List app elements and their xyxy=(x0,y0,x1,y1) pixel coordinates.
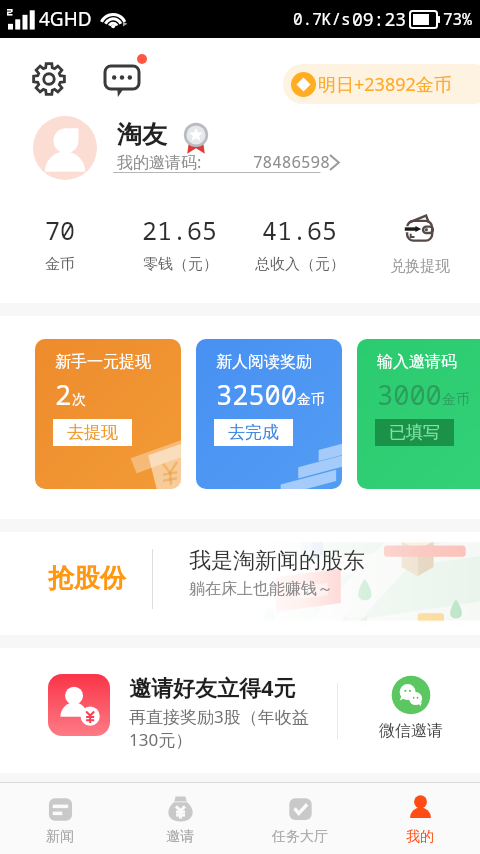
staticText: 70 xyxy=(45,213,76,247)
staticText: 我的邀请码: xyxy=(117,151,202,173)
staticText: 金币 xyxy=(442,391,470,409)
staticText: 新闻 xyxy=(46,828,74,846)
staticText: 已填写 xyxy=(389,422,440,443)
button[interactable]: 去提现 xyxy=(53,419,132,446)
button[interactable]: 去完成 xyxy=(214,419,293,446)
staticText: 73% xyxy=(443,8,472,30)
button[interactable]: 我的邀请码: xyxy=(113,149,341,176)
button[interactable]: 抢股份 xyxy=(0,532,480,635)
staticText: 2 xyxy=(55,376,72,413)
button[interactable]: 新手一元提现 xyxy=(35,339,181,489)
staticText: 邀请 xyxy=(166,828,194,846)
staticText: 明日+23892金币 xyxy=(318,72,452,97)
button[interactable]: 我的 xyxy=(360,783,480,854)
staticText: 去提现 xyxy=(67,422,118,443)
staticText: 躺在床上也能赚钱～ xyxy=(189,579,333,599)
staticText: 兑换提现 xyxy=(390,257,450,276)
staticText: 金币 xyxy=(45,255,75,274)
staticText: 新手一元提现 xyxy=(55,352,151,372)
staticText: 总收入（元） xyxy=(255,255,345,274)
staticText: 4GHD xyxy=(39,6,92,32)
button[interactable]: 邀请好友立得4元 xyxy=(129,672,334,751)
staticText: 次 xyxy=(72,391,86,409)
staticText: 21.65 xyxy=(142,213,218,247)
staticText: 09:23 xyxy=(352,7,406,32)
staticText: 0.7K/s xyxy=(293,8,351,30)
staticText: 淘友 xyxy=(117,119,167,150)
staticText: 32500 xyxy=(216,376,297,413)
staticText: 输入邀请码 xyxy=(377,352,457,372)
staticText: 金币 xyxy=(297,391,325,409)
button[interactable]: 任务大厅 xyxy=(240,783,360,854)
button[interactable]: 新人阅读奖励 xyxy=(196,339,342,489)
button[interactable]: 41.65 xyxy=(240,198,360,288)
button[interactable]: 兑换提现 xyxy=(360,198,480,288)
staticText: 我是淘新闻的股东 xyxy=(189,547,365,575)
button[interactable]: Settings xyxy=(30,60,68,98)
button[interactable]: 邀请 xyxy=(120,783,240,854)
staticText: 去完成 xyxy=(228,422,279,443)
staticText: 41.65 xyxy=(262,213,338,247)
staticText: 微信邀请 xyxy=(379,721,443,741)
staticText: 再直接奖励3股（年收益130元） xyxy=(129,705,334,751)
button[interactable]: Messages xyxy=(100,58,146,100)
button[interactable]: 70 xyxy=(0,198,120,288)
staticText: 我的 xyxy=(406,828,434,846)
staticText: 零钱（元） xyxy=(143,255,218,274)
staticText: 任务大厅 xyxy=(272,828,328,846)
staticText: 新人阅读奖励 xyxy=(216,352,312,372)
button[interactable]: 已填写 xyxy=(375,419,454,446)
button[interactable]: 21.65 xyxy=(120,198,240,288)
button[interactable]: Invite friends xyxy=(48,674,110,736)
button[interactable]: 新闻 xyxy=(0,783,120,854)
staticText: 抢股份 xyxy=(48,562,126,595)
button[interactable]: 输入邀请码 xyxy=(357,339,480,489)
staticText: 78486598 xyxy=(253,151,330,173)
staticText: 邀请好友立得4元 xyxy=(129,672,296,702)
button[interactable]: 微信邀请 xyxy=(351,674,471,741)
staticText: 3000 xyxy=(377,376,442,413)
button[interactable]: 明日+23892金币 xyxy=(283,64,480,104)
